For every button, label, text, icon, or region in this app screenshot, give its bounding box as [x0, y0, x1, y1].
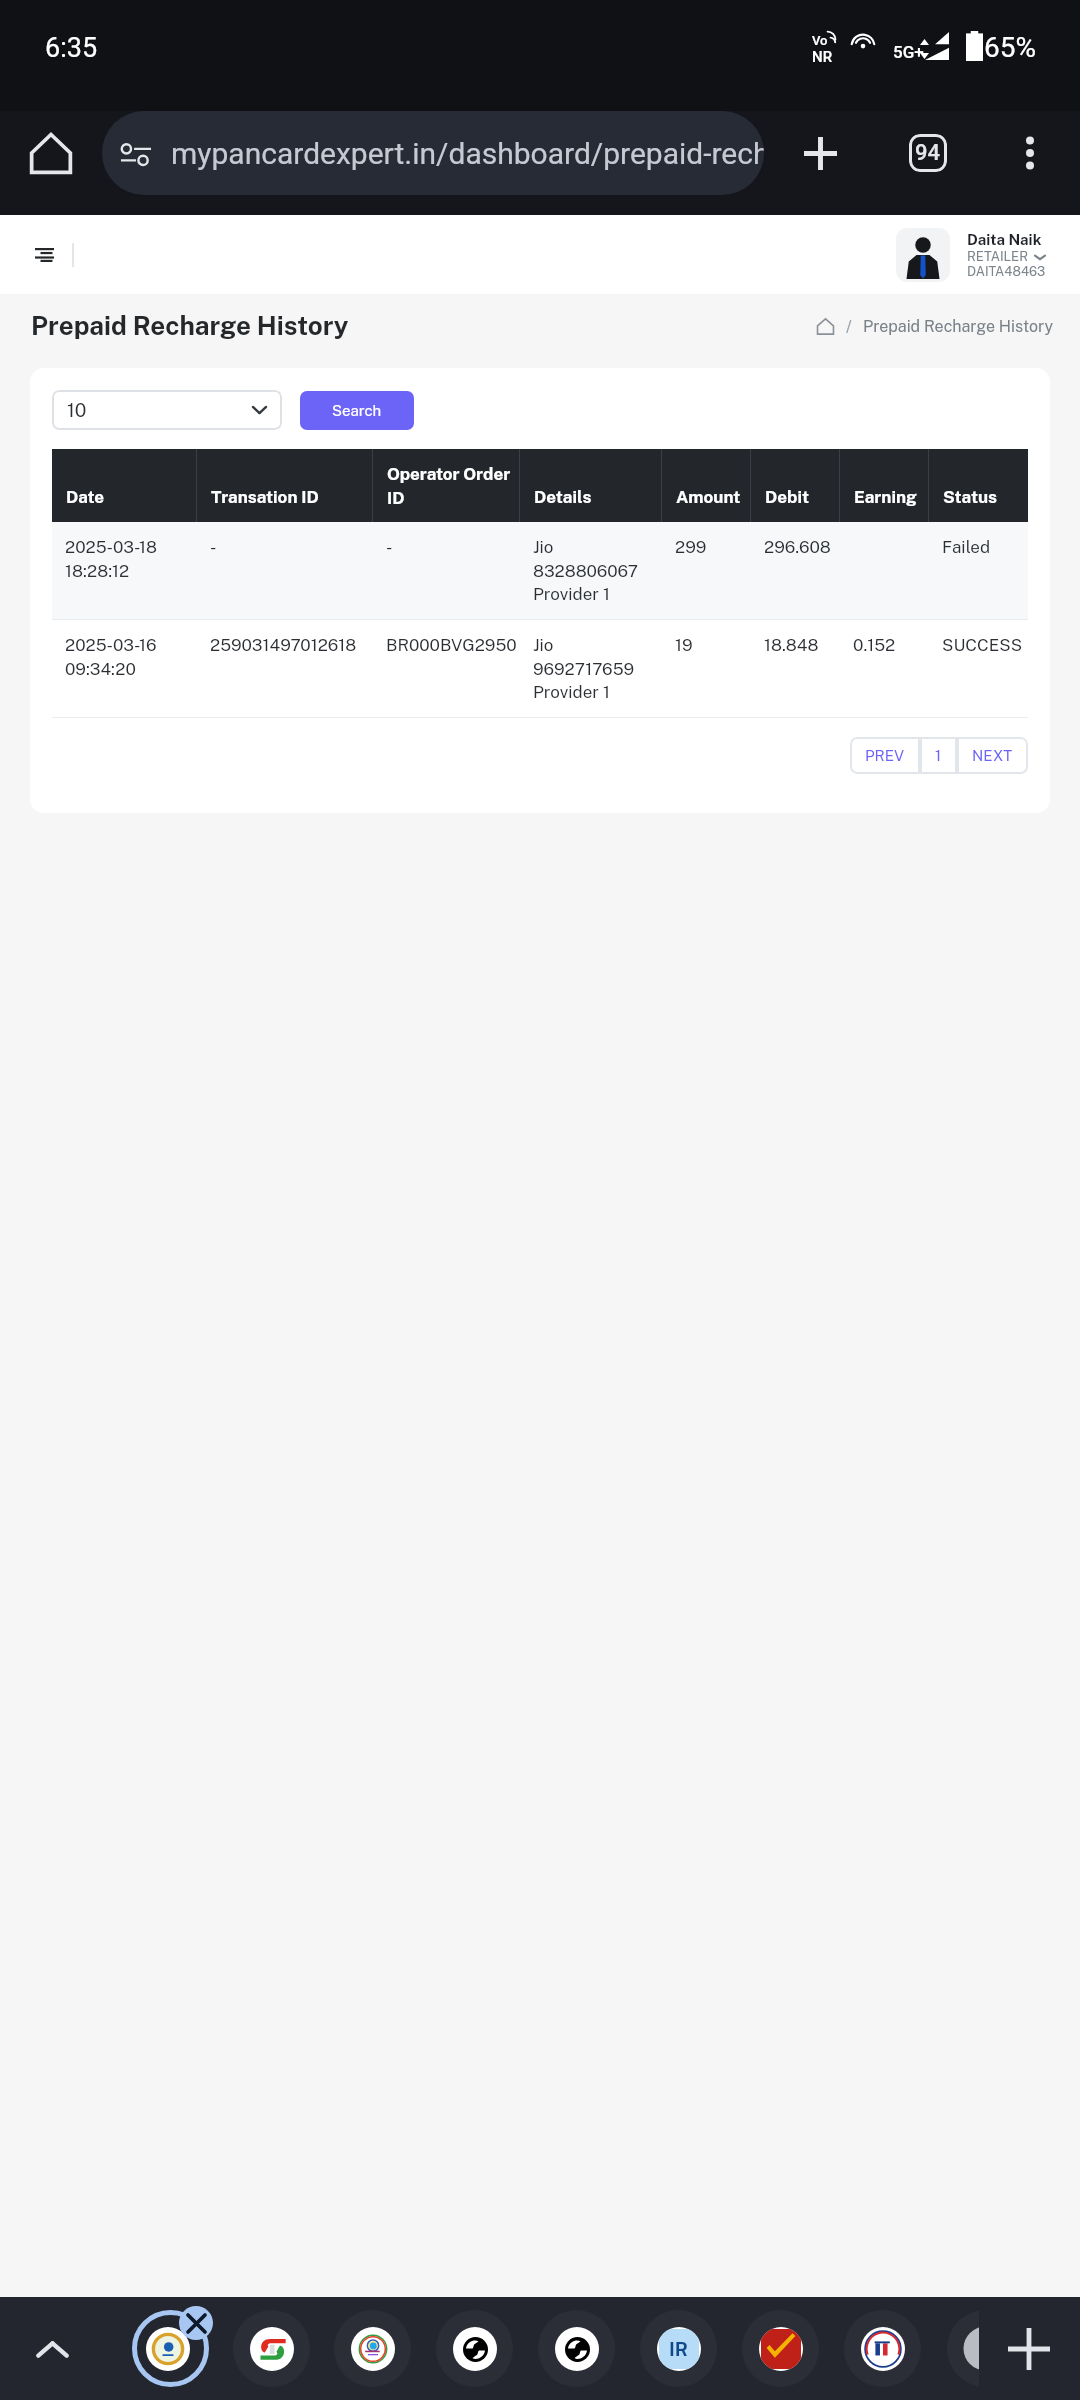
staticText: PREV: [865, 747, 905, 765]
staticText: 18.848: [764, 635, 819, 655]
button[interactable]: Current tab: [132, 2310, 209, 2387]
button[interactable]: Search: [300, 391, 414, 430]
button[interactable]: Tab 2: [233, 2310, 310, 2387]
staticText: BR000BVG2950: [386, 635, 517, 655]
staticText: RETAILER: [967, 249, 1029, 264]
staticText: Jio 8328806067 Provider 1: [533, 537, 639, 603]
button[interactable]: Tab 8: [844, 2310, 921, 2387]
button[interactable]: 10: [52, 390, 282, 430]
staticText: SUCCESS: [942, 635, 1023, 655]
staticText: -: [210, 537, 217, 557]
staticText: 19: [675, 635, 693, 655]
staticText: Amount: [676, 487, 741, 507]
staticText: Failed: [942, 537, 991, 557]
staticText: Jio 9692717659 Provider 1: [533, 635, 635, 701]
staticText: 0.152: [853, 635, 896, 655]
staticText: 2025-03-18 18:28:12: [65, 537, 158, 580]
staticText: Status: [943, 487, 997, 507]
button[interactable]: Daita Naik: [896, 228, 1080, 282]
staticText: IR: [669, 2338, 689, 2360]
staticText: /: [846, 317, 852, 336]
button[interactable]: PREV: [850, 737, 920, 774]
staticText: 6:35: [45, 32, 98, 64]
button[interactable]: Home: [14, 116, 88, 190]
staticText: mypancardexpert.in/dashboard/prepaid-rec…: [171, 136, 764, 171]
staticText: Prepaid Recharge History: [31, 310, 349, 341]
staticText: 10: [67, 399, 87, 421]
staticText: 1: [935, 747, 942, 765]
staticText: 299: [675, 537, 707, 557]
staticText: 94: [915, 140, 941, 166]
staticText: Transation ID: [211, 487, 319, 507]
button[interactable]: Tab 7: [742, 2310, 819, 2387]
button[interactable]: New tab: [780, 113, 860, 193]
button[interactable]: 1: [920, 737, 957, 774]
button[interactable]: NEXT: [957, 737, 1028, 774]
button[interactable]: mypancardexpert.in/dashboard/prepaid-rec…: [102, 111, 764, 195]
staticText: 296.608: [764, 537, 831, 557]
staticText: 2025-03-16 09:34:20: [65, 635, 157, 678]
staticText: -: [386, 537, 393, 557]
staticText: Search: [332, 402, 382, 420]
staticText: Vo: [812, 33, 828, 48]
staticText: 65%: [984, 31, 1036, 64]
button[interactable]: Close tab: [179, 2306, 213, 2340]
button[interactable]: More options: [990, 113, 1070, 193]
staticText: NEXT: [972, 747, 1013, 765]
button[interactable]: Switch tabs: [888, 113, 968, 193]
staticText: Details: [534, 487, 592, 507]
staticText: Debit: [765, 487, 810, 507]
button[interactable]: Tab 9: [947, 2310, 979, 2387]
staticText: Prepaid Recharge History: [863, 317, 1054, 336]
button[interactable]: Expand tab strip: [24, 2321, 80, 2377]
staticText: Date: [66, 487, 105, 507]
staticText: Operator Order ID: [387, 464, 511, 507]
staticText: NR: [812, 48, 833, 66]
staticText: Daita Naik: [967, 231, 1042, 249]
staticText: Earning: [854, 487, 917, 507]
button[interactable]: Tab 4: [436, 2310, 513, 2387]
button[interactable]: New tab: [1000, 2320, 1058, 2378]
button[interactable]: Tab 5: [538, 2310, 615, 2387]
button[interactable]: Tab 6: [640, 2310, 717, 2387]
staticText: 259031497012618: [210, 635, 357, 655]
staticText: 5G+: [893, 42, 924, 62]
button[interactable]: Menu: [22, 233, 66, 277]
button[interactable]: Tab 3: [334, 2310, 411, 2387]
staticText: DAITA48463: [967, 264, 1046, 279]
